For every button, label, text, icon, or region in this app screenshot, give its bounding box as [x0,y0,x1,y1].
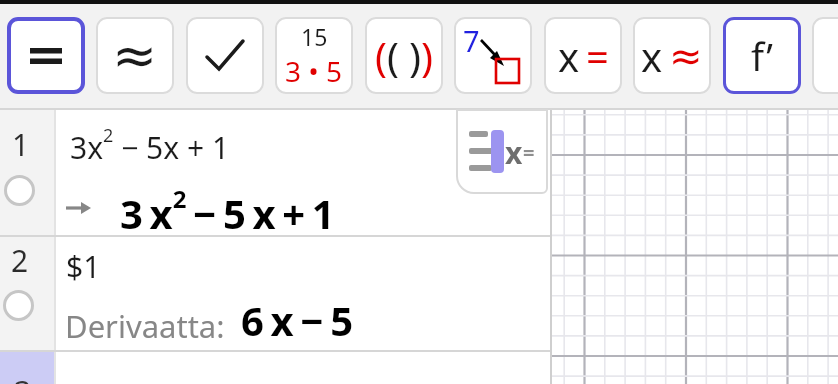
staticText: ( [375,29,387,83]
staticText: ) [421,29,433,83]
staticText: 7 [463,21,480,60]
staticText: 6 x − 5 [241,293,354,347]
staticText: x [505,132,523,173]
button[interactable] [812,17,838,94]
staticText: ≈ [112,24,158,87]
staticText: ≈ [669,33,703,80]
staticText: ) [409,29,421,83]
button[interactable]: ≈ [96,17,174,94]
button[interactable] [0,352,552,384]
button[interactable] [186,17,264,94]
button[interactable]: 15 [275,17,353,94]
staticText: f’ [751,30,774,82]
staticText: 3x2 − 5x + 1 [70,123,230,167]
staticText: 15 [301,21,328,52]
staticText: x [641,29,663,83]
button[interactable]: x [456,109,548,194]
staticText: = [586,29,609,83]
staticText: 3 [14,371,32,384]
button[interactable] [0,110,552,235]
button[interactable]: f’ [723,17,801,94]
staticText: = [523,139,535,166]
button[interactable]: 7 [454,17,532,94]
button[interactable] [0,237,552,350]
staticText: 3 • 5 [285,52,343,90]
button[interactable]: x [633,17,711,94]
staticText: ( [387,29,399,83]
staticText: 2 [11,240,29,281]
staticText: 3 x2 − 5 x + 1 [120,182,335,241]
button[interactable]: x [544,17,622,94]
staticText: 1 [12,124,30,165]
staticText: $1 [66,246,101,287]
staticText: x [558,29,580,83]
button[interactable] [7,17,85,94]
button[interactable]: ( [365,17,443,94]
staticText: Derivaatta: [65,305,225,347]
